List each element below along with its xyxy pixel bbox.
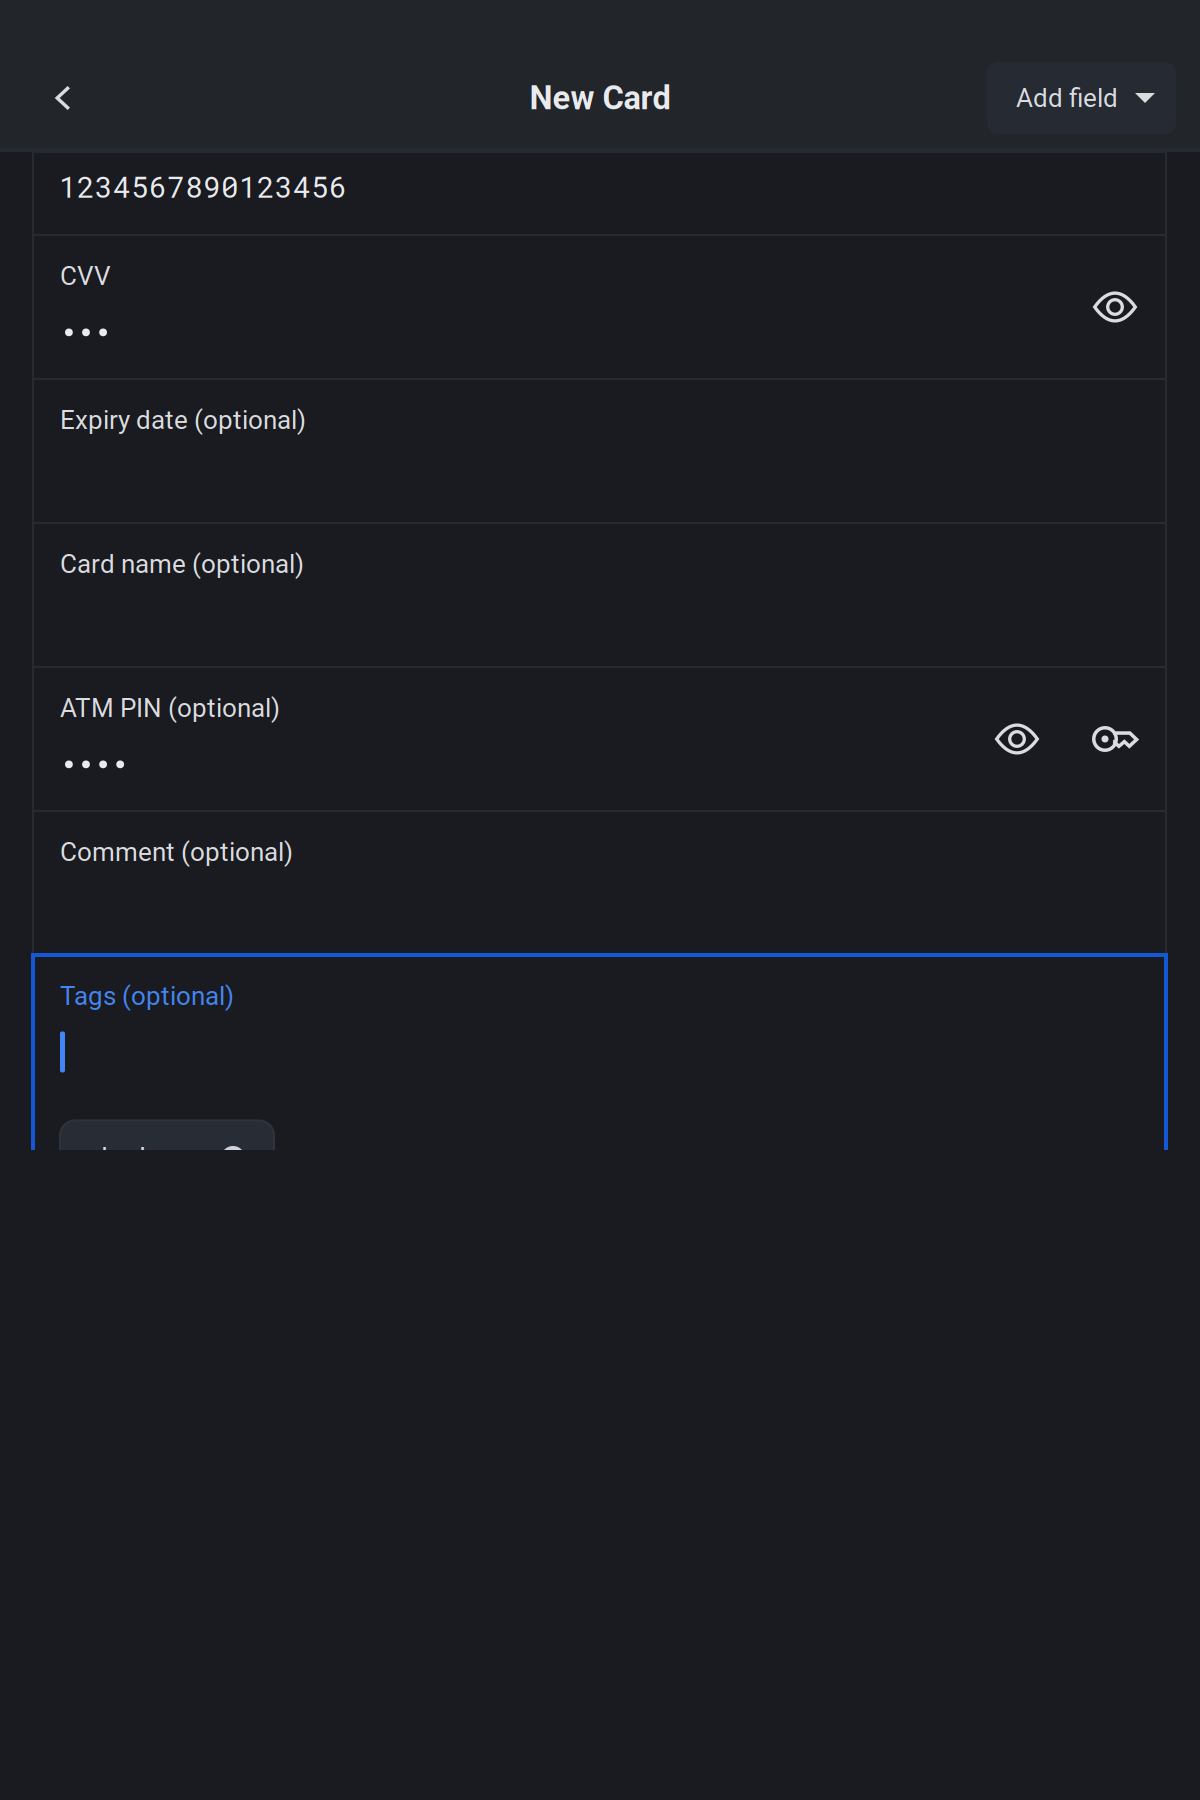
button[interactable]: Back bbox=[25, 60, 101, 136]
staticText: Comment (optional) bbox=[60, 837, 293, 867]
staticText: Card name (optional) bbox=[60, 549, 304, 579]
staticText: ATM PIN (optional) bbox=[60, 693, 280, 723]
staticText: Tags (optional) bbox=[60, 981, 234, 1011]
button[interactable]: Show ATM PIN bbox=[975, 697, 1059, 781]
staticText: 1234567890123456 bbox=[59, 167, 347, 206]
staticText: Expiry date (optional) bbox=[60, 405, 306, 435]
button[interactable]: Show CVV bbox=[1073, 265, 1157, 349]
staticText: New Card bbox=[529, 79, 670, 117]
staticText: Add field bbox=[1016, 83, 1118, 113]
staticText: de.dev bbox=[92, 1142, 175, 1174]
button[interactable]: Generate PIN bbox=[1073, 697, 1157, 781]
staticText: CVV bbox=[60, 261, 111, 291]
button[interactable]: Add field bbox=[987, 62, 1176, 134]
